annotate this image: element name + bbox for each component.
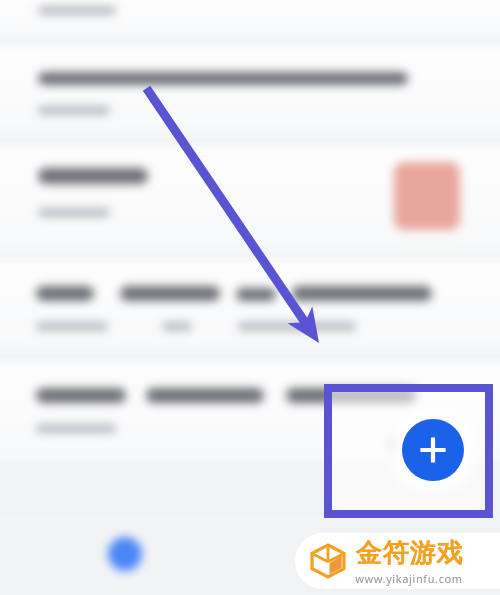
staticText: 95 xyxy=(388,432,410,458)
button[interactable] xyxy=(0,146,500,250)
staticText: 金符游戏 xyxy=(355,537,463,570)
button[interactable] xyxy=(0,362,500,460)
button[interactable]: Add xyxy=(402,419,464,481)
staticText: www.yikajinfu.com xyxy=(355,571,463,586)
button[interactable] xyxy=(0,260,500,352)
button[interactable]: Chats tab xyxy=(108,537,142,571)
button[interactable] xyxy=(0,46,500,136)
button[interactable] xyxy=(0,0,500,36)
